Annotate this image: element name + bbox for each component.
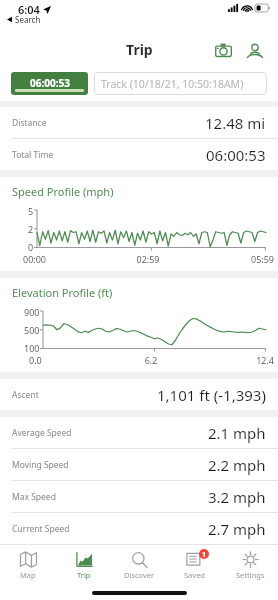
staticText: Current Speed (12, 523, 70, 535)
staticText: 6.2 (110, 354, 192, 366)
button[interactable]: Locate me (242, 37, 268, 63)
staticText: Average Speed (12, 427, 72, 439)
staticText: 2.1 mph (208, 423, 266, 443)
staticText: 6:04 (18, 2, 40, 17)
button[interactable]: Settings (223, 545, 277, 585)
staticText: 1 (202, 550, 206, 559)
staticText: 2.2 mph (208, 455, 266, 475)
staticText: Trip (77, 570, 91, 580)
staticText: 2.7 mph (208, 519, 266, 539)
staticText: Total Time (12, 149, 54, 161)
button[interactable]: Distance (0, 107, 278, 138)
staticText: 0.0 (29, 354, 110, 366)
button[interactable]: 06:00:53 (11, 72, 88, 95)
staticText: Discover (124, 570, 155, 580)
staticText: Search (15, 14, 41, 25)
staticText: Ascent (12, 389, 39, 401)
staticText: Speed Profile (mph) (12, 184, 114, 199)
staticText: 2 (28, 223, 34, 235)
staticText: 06:00:53 (206, 145, 266, 165)
staticText: 0 (28, 241, 34, 253)
button[interactable]: 1 (167, 545, 221, 585)
button[interactable]: Max Speed (0, 481, 278, 512)
staticText: 02:59 (106, 253, 190, 265)
staticText: 05:59 (190, 253, 274, 265)
button[interactable]: Total Time (0, 139, 278, 170)
staticText: 06:00:53 (30, 76, 70, 90)
staticText: 500 (24, 324, 40, 336)
button[interactable]: Trip (57, 545, 111, 585)
staticText: Distance (12, 117, 47, 129)
button[interactable]: Map (1, 545, 55, 585)
staticText: 100 (24, 342, 40, 354)
staticText: 1,101 ft (-1,393) (157, 385, 266, 405)
staticText: Trip (126, 40, 153, 59)
staticText: 3.2 mph (208, 487, 266, 507)
button[interactable]: Ascent (0, 379, 278, 410)
staticText: Moving Speed (12, 459, 69, 471)
button[interactable]: Take photo (210, 37, 236, 63)
staticText: Elevation Profile (ft) (12, 285, 113, 300)
staticText: Saved (184, 570, 205, 580)
staticText: 900 (24, 306, 40, 318)
staticText: Max Speed (12, 491, 56, 503)
staticText: 00:00 (23, 253, 106, 265)
staticText: 12.4 (192, 354, 274, 366)
staticText: 5 (28, 205, 34, 217)
button[interactable]: Average Speed (0, 417, 278, 448)
button[interactable]: Current Speed (0, 513, 278, 544)
button[interactable]: Discover (112, 545, 166, 585)
staticText: Track (10/18/21, 10:50:18AM) (101, 77, 244, 91)
staticText: Map (20, 570, 36, 580)
staticText: Settings (236, 570, 265, 580)
button[interactable]: Track (10/18/21, 10:50:18AM) (94, 72, 267, 95)
staticText: 12.48 mi (205, 113, 266, 133)
button[interactable]: Moving Speed (0, 449, 278, 480)
